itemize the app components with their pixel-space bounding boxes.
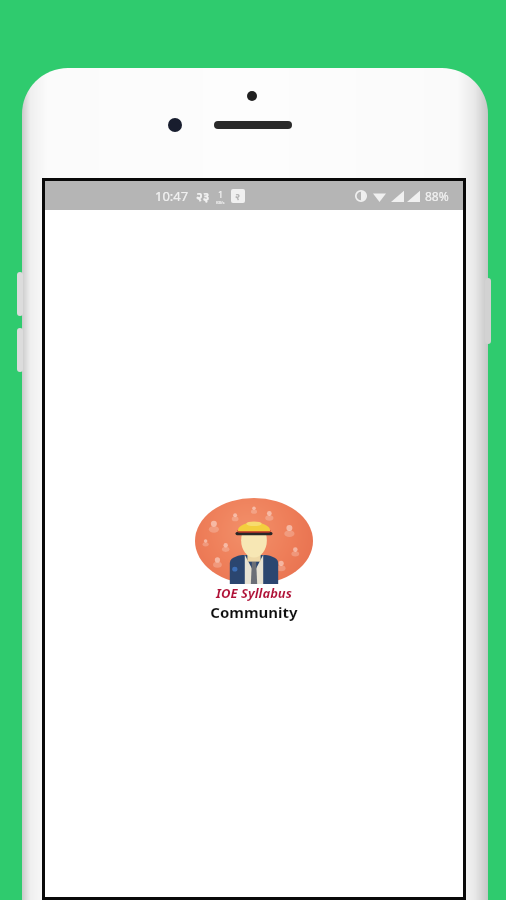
staticText: IOE Syllabus	[216, 584, 292, 602]
staticText: 1	[218, 188, 224, 200]
staticText: KB/s	[216, 200, 225, 205]
staticText: २	[235, 190, 241, 202]
staticText: २३	[196, 188, 210, 204]
button[interactable]: IOE Syllabus Community logo	[195, 498, 313, 622]
staticText: 88%	[425, 188, 449, 204]
staticText: Community	[210, 602, 298, 622]
staticText: 10:47	[155, 187, 189, 205]
